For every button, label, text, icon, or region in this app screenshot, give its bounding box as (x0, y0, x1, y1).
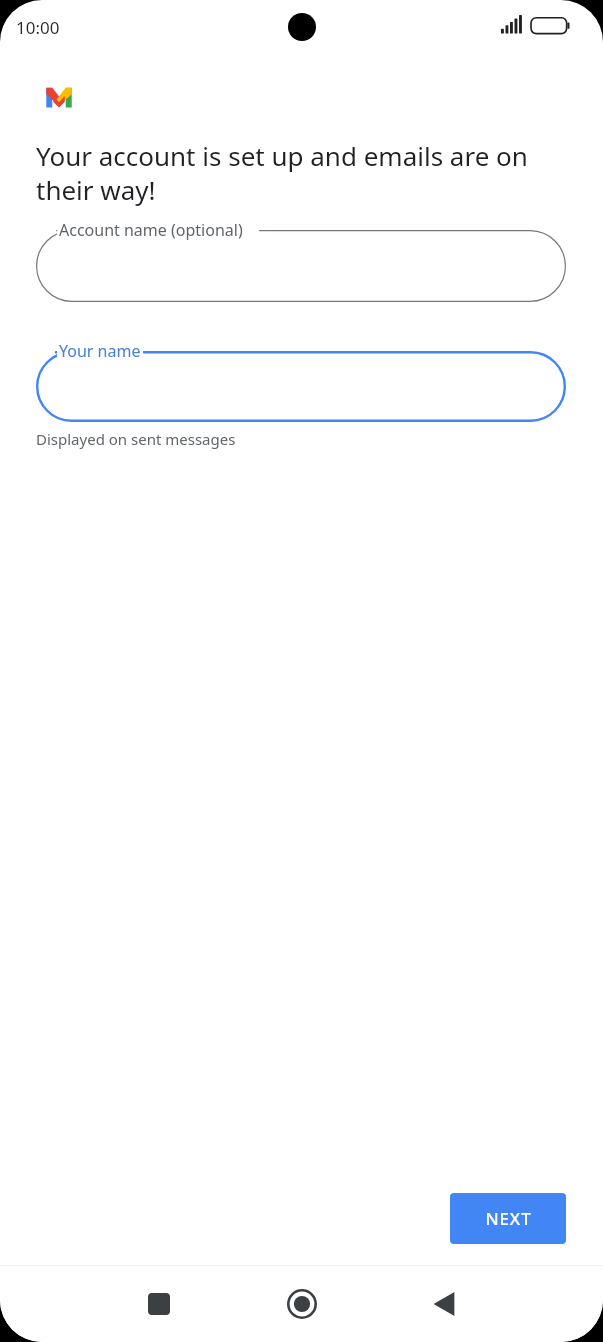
staticText: NEXT (485, 1207, 532, 1230)
button[interactable]: Your name (36, 351, 566, 422)
button[interactable]: Home (267, 1269, 337, 1339)
button[interactable]: NEXT (450, 1193, 566, 1244)
button[interactable]: Account name (optional) (36, 230, 566, 302)
button[interactable]: Recent apps (124, 1269, 194, 1339)
staticText: Your name (59, 340, 141, 362)
staticText: Displayed on sent messages (36, 429, 236, 449)
staticText: 10:00 (16, 16, 60, 39)
staticText: Your account is set up and emails are on… (36, 138, 571, 207)
staticText: Account name (optional) (59, 219, 243, 241)
button[interactable]: Back (409, 1269, 479, 1339)
